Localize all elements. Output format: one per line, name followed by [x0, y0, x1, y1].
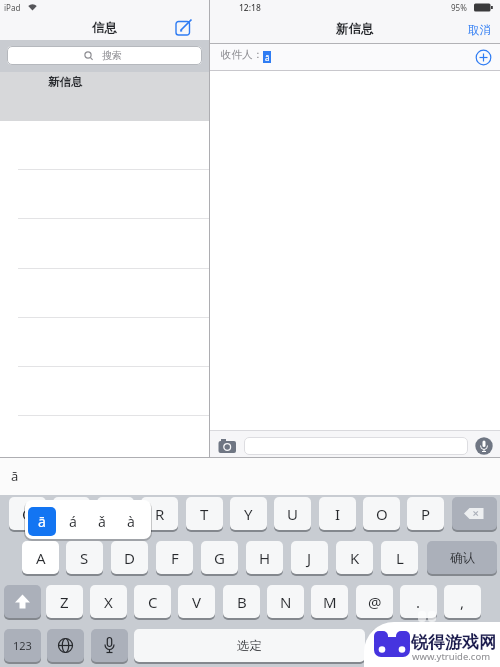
staticText: S [80, 548, 89, 568]
staticText: Q [22, 504, 34, 524]
staticText: Z [60, 592, 69, 612]
staticText: W [65, 504, 79, 524]
button[interactable]: M [311, 585, 348, 618]
button[interactable] [414, 629, 497, 662]
staticText: à [127, 512, 135, 531]
button[interactable]: ā [28, 507, 56, 536]
button[interactable]: Q [9, 497, 46, 530]
staticText: á [69, 512, 77, 531]
button[interactable]: S [66, 541, 103, 574]
button[interactable]: X [90, 585, 127, 618]
staticText: ā [265, 52, 270, 63]
button[interactable]: G [201, 541, 238, 574]
button[interactable]: H [246, 541, 283, 574]
staticText: 新信息 [48, 75, 83, 89]
staticText: T [200, 504, 209, 524]
button[interactable] [452, 497, 497, 530]
staticText: 选定 [237, 638, 262, 654]
button[interactable]: 锐得游戏网 [364, 622, 500, 667]
staticText: 收件人： [221, 48, 263, 61]
button[interactable]: ā [3, 462, 27, 490]
button[interactable] [371, 629, 408, 662]
button[interactable]: 选定 [134, 629, 365, 662]
button[interactable] [474, 48, 493, 67]
button[interactable]: @ [356, 585, 393, 618]
staticText: ā [11, 467, 19, 485]
staticText: X [104, 592, 113, 612]
staticText: , [460, 592, 465, 612]
staticText: C [148, 592, 158, 612]
staticText: B [237, 592, 247, 612]
staticText: 新信息 [336, 21, 374, 37]
staticText: H [259, 548, 271, 568]
staticText: N [280, 592, 292, 612]
button[interactable]: R [141, 497, 178, 530]
button[interactable] [176, 18, 196, 36]
button[interactable]: . [400, 585, 437, 618]
button[interactable]: ǎ [91, 507, 113, 536]
staticText: G [214, 548, 225, 568]
button[interactable] [47, 629, 84, 662]
staticText: ā [38, 512, 46, 531]
staticText: P [421, 504, 431, 524]
button[interactable]: Y [230, 497, 267, 530]
staticText: 123 [13, 638, 32, 653]
staticText: 搜索 [102, 49, 122, 62]
button[interactable]: 搜索 [7, 46, 202, 65]
staticText: I [335, 504, 341, 524]
button[interactable]: V [178, 585, 215, 618]
button[interactable]: 确认 [427, 541, 497, 574]
button[interactable]: O [363, 497, 400, 530]
button[interactable]: , [444, 585, 481, 618]
staticText: U [287, 504, 298, 524]
button[interactable] [91, 629, 128, 662]
staticText: R [155, 504, 165, 524]
staticText: F [171, 548, 179, 568]
staticText: M [323, 592, 337, 612]
button[interactable]: J [291, 541, 328, 574]
button[interactable]: á [62, 507, 84, 536]
staticText: @ [368, 592, 382, 612]
button[interactable]: P [407, 497, 444, 530]
button[interactable]: 新信息 [0, 72, 209, 121]
staticText: iPad [4, 2, 21, 13]
button[interactable]: à [120, 507, 142, 536]
button[interactable] [4, 585, 41, 618]
button[interactable]: K [336, 541, 373, 574]
staticText: 确认 [450, 550, 475, 566]
button[interactable]: C [134, 585, 171, 618]
button[interactable]: D [111, 541, 148, 574]
button[interactable]: E [97, 497, 134, 530]
button[interactable]: Z [46, 585, 83, 618]
staticText: V [192, 592, 202, 612]
button[interactable]: W [53, 497, 90, 530]
button[interactable]: 取消 [462, 21, 496, 38]
button[interactable] [218, 438, 238, 455]
staticText: 95% [451, 2, 467, 13]
staticText: ǎ [98, 512, 106, 531]
staticText: Y [244, 504, 253, 524]
button[interactable]: U [274, 497, 311, 530]
staticText: 12:18 [239, 2, 261, 14]
button[interactable]: A [22, 541, 59, 574]
button[interactable]: N [267, 585, 304, 618]
button[interactable]: 123 [4, 629, 41, 662]
staticText: 锐得游戏网 [411, 632, 496, 653]
staticText: . [416, 592, 421, 612]
staticText: O [376, 504, 388, 524]
staticText: D [124, 548, 135, 568]
button[interactable]: L [381, 541, 418, 574]
button[interactable]: F [156, 541, 193, 574]
staticText: 取消 [468, 23, 491, 37]
staticText: www.ytruide.com [412, 650, 491, 663]
button[interactable]: B [223, 585, 260, 618]
button[interactable] [244, 437, 468, 455]
button[interactable]: T [186, 497, 223, 530]
button[interactable]: I [319, 497, 356, 530]
staticText: 信息 [92, 20, 117, 36]
staticText: L [396, 548, 404, 568]
staticText: J [307, 548, 312, 568]
button[interactable] [475, 437, 493, 455]
staticText: K [350, 548, 360, 568]
